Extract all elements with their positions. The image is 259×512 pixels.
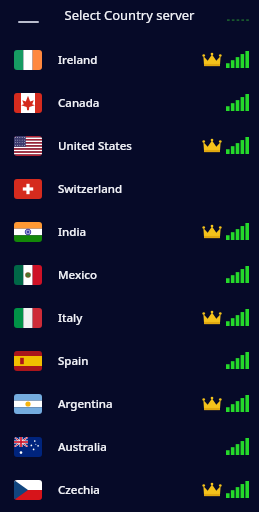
other: Signal strength: [226, 266, 249, 283]
other: Signal strength: [226, 438, 249, 455]
staticText: Czechia: [58, 482, 100, 498]
button[interactable]: India: [0, 210, 259, 253]
staticText: Select Country server: [0, 6, 259, 24]
staticText: Switzerland: [58, 181, 123, 197]
button[interactable]: Australia: [0, 425, 259, 468]
staticText: India: [58, 224, 87, 240]
button[interactable]: Spain: [0, 339, 259, 382]
staticText: Canada: [58, 95, 100, 111]
other: Premium: [203, 139, 221, 153]
staticText: Argentina: [58, 396, 113, 412]
staticText: United States: [58, 138, 132, 154]
button[interactable]: Mexico: [0, 253, 259, 296]
other: Premium: [203, 397, 221, 411]
other: Signal strength: [226, 223, 249, 240]
other: Signal strength: [226, 137, 249, 154]
other: Signal strength: [226, 51, 249, 68]
button[interactable]: Argentina: [0, 382, 259, 425]
other: Premium: [203, 311, 221, 325]
button[interactable]: Czechia: [0, 468, 259, 511]
other: Premium: [203, 483, 221, 497]
staticText: Italy: [58, 310, 83, 326]
other: Signal strength: [226, 94, 249, 111]
button[interactable]: Canada: [0, 81, 259, 124]
button[interactable]: Italy: [0, 296, 259, 339]
other: Signal strength: [226, 352, 249, 369]
staticText: Australia: [58, 439, 107, 455]
other: Premium: [203, 225, 221, 239]
button[interactable]: Ireland: [0, 38, 259, 81]
other: Signal strength: [226, 309, 249, 326]
button[interactable]: Switzerland: [0, 167, 259, 210]
staticText: Ireland: [58, 52, 98, 68]
other: Signal strength: [226, 395, 249, 412]
button[interactable]: Back: [18, 21, 39, 23]
other: Signal strength: [226, 481, 249, 498]
button[interactable]: United States: [0, 124, 259, 167]
other: Premium: [203, 53, 221, 67]
staticText: Spain: [58, 353, 89, 369]
staticText: Mexico: [58, 267, 97, 283]
